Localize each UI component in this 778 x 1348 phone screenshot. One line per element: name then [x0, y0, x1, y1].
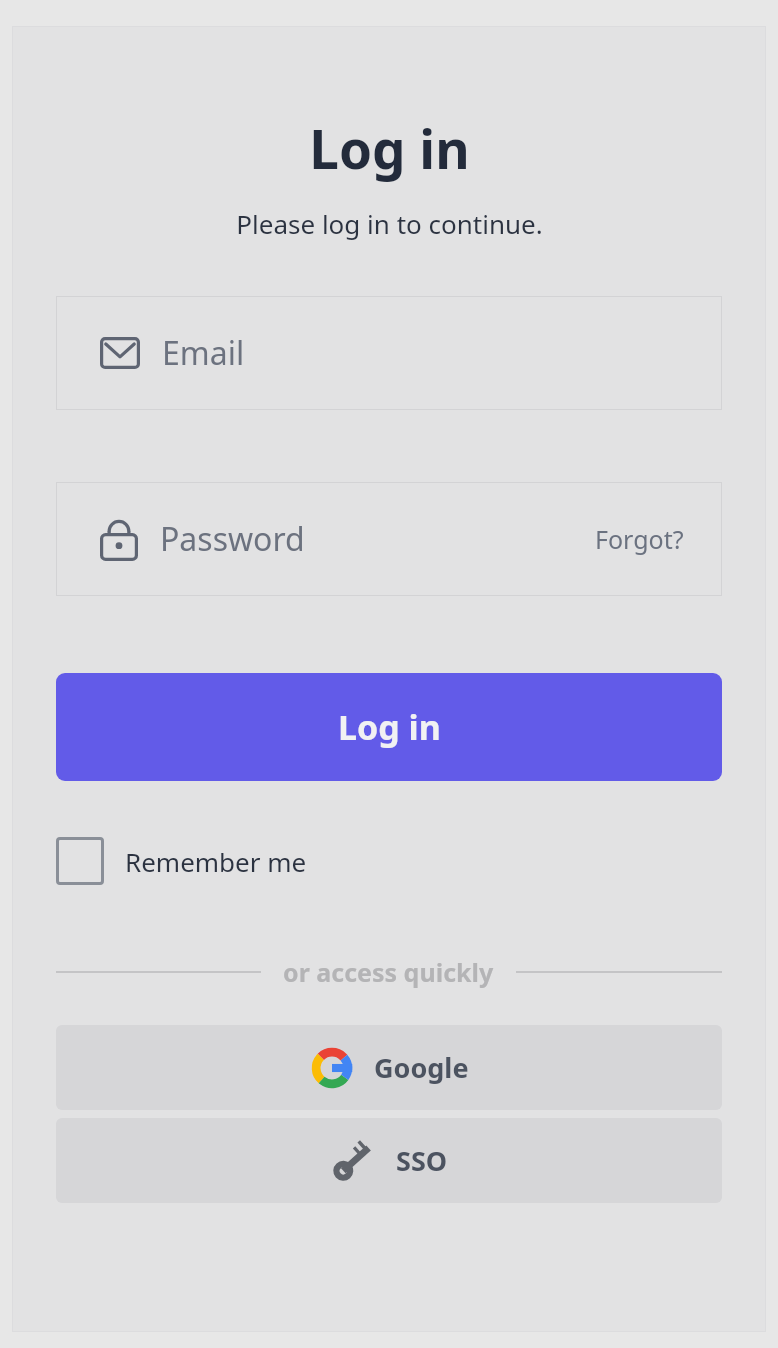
button[interactable]: Remember me: [56, 837, 307, 885]
button[interactable]: Forgot?: [595, 522, 684, 556]
staticText: or access quickly: [283, 955, 494, 989]
button[interactable]: Email: [56, 296, 722, 410]
other: Sign in with SSO: [330, 1141, 376, 1181]
button[interactable]: Sign in with SSO: [56, 1118, 722, 1203]
other: Email: [100, 337, 140, 369]
other: Password: [100, 517, 138, 561]
staticText: Log in: [338, 704, 441, 750]
staticText: Please log in to continue.: [236, 206, 543, 241]
staticText: Password: [160, 517, 305, 561]
staticText: Forgot?: [595, 522, 684, 556]
button[interactable]: Log in: [56, 673, 722, 781]
staticText: Log in: [309, 112, 470, 184]
staticText: Email: [162, 331, 245, 375]
button[interactable]: Sign in with Google: [56, 1025, 722, 1110]
other: Sign in with Google: [310, 1046, 354, 1090]
staticText: Remember me: [125, 844, 307, 879]
staticText: SSO: [396, 1142, 448, 1179]
button[interactable]: Password: [56, 482, 722, 596]
staticText: Google: [374, 1049, 469, 1086]
